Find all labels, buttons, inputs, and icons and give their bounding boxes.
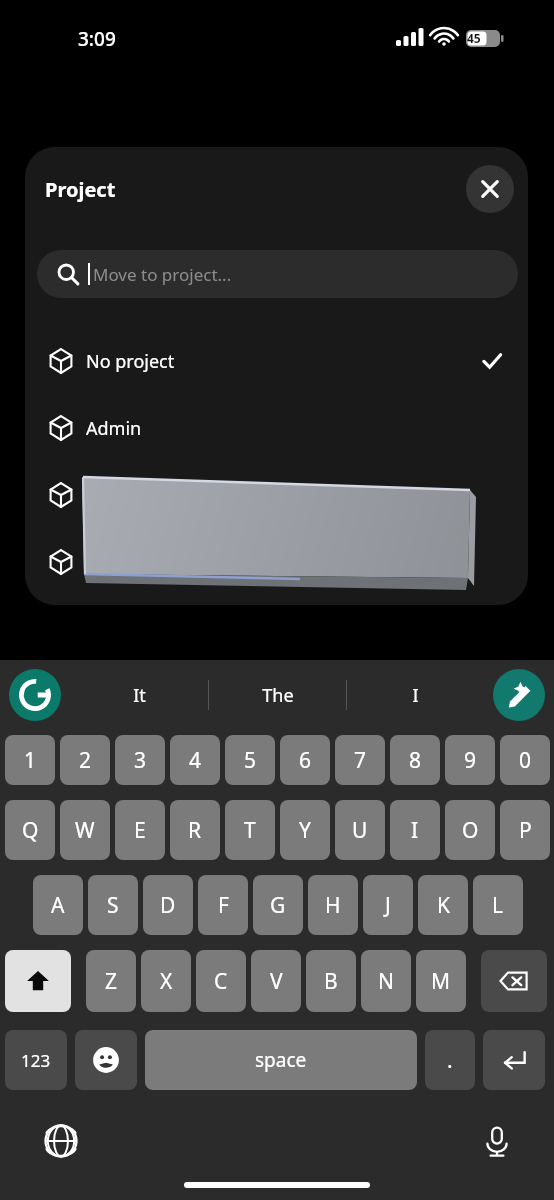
button[interactable]: V	[251, 950, 301, 1012]
staticText: I	[412, 683, 419, 708]
button[interactable]: 4	[170, 735, 220, 785]
staticText: L	[492, 891, 504, 920]
button[interactable]: Backspace	[481, 950, 547, 1012]
staticText: A	[51, 891, 65, 920]
staticText: W	[75, 816, 95, 845]
button[interactable]: 0	[500, 735, 550, 785]
button[interactable]: 9	[445, 735, 495, 785]
button[interactable]: G	[253, 875, 303, 935]
button[interactable]: E	[115, 800, 165, 860]
button[interactable]: I	[347, 660, 484, 730]
staticText: D	[160, 891, 176, 920]
staticText: space	[255, 1047, 307, 1073]
button[interactable]: L	[473, 875, 523, 935]
button[interactable]: P	[500, 800, 550, 860]
button[interactable]	[25, 534, 528, 590]
button[interactable]: Y	[280, 800, 330, 860]
button[interactable]: Shift	[5, 950, 71, 1012]
staticText: O	[462, 816, 479, 845]
staticText: No project	[86, 349, 175, 374]
button[interactable]: D	[143, 875, 193, 935]
button[interactable]: space	[145, 1030, 417, 1090]
button[interactable]: F	[198, 875, 248, 935]
staticText: Q	[22, 816, 39, 845]
button[interactable]: O	[445, 800, 495, 860]
button[interactable]: 3	[115, 735, 165, 785]
button[interactable]: Return	[483, 1030, 545, 1090]
staticText: N	[378, 967, 394, 996]
button[interactable]: 8	[390, 735, 440, 785]
staticText: U	[352, 816, 368, 845]
button[interactable]: No project	[25, 333, 528, 389]
button[interactable]: Assistant	[493, 669, 545, 721]
staticText: It	[133, 683, 146, 708]
staticText: C	[214, 967, 228, 996]
staticText: Admin	[86, 416, 142, 441]
staticText: 45	[467, 30, 481, 46]
staticText: H	[325, 891, 341, 920]
staticText: J	[385, 891, 391, 920]
button[interactable]: Q	[5, 800, 55, 860]
button[interactable]: The	[209, 660, 346, 730]
staticText: Y	[299, 816, 311, 845]
button[interactable]: .	[425, 1030, 475, 1090]
button[interactable]: Z	[86, 950, 136, 1012]
staticText: 123	[21, 1049, 51, 1072]
button[interactable]: Voice input	[474, 1118, 520, 1164]
button[interactable]: B	[306, 950, 356, 1012]
button[interactable]: Close	[466, 165, 514, 213]
button[interactable]: S	[88, 875, 138, 935]
button[interactable]: M	[416, 950, 466, 1012]
staticText: .	[447, 1046, 453, 1075]
button[interactable]: 5	[225, 735, 275, 785]
button[interactable]: K	[418, 875, 468, 935]
staticText: 3	[134, 746, 147, 775]
staticText: Move to project...	[93, 263, 232, 286]
button[interactable]: 1	[5, 735, 55, 785]
staticText: Project	[45, 176, 116, 203]
button[interactable]: X	[141, 950, 191, 1012]
staticText: 1	[24, 746, 37, 775]
button[interactable]: 2	[60, 735, 110, 785]
staticText: I	[411, 816, 419, 845]
button[interactable]: T	[225, 800, 275, 860]
staticText: G	[270, 891, 286, 920]
staticText: 4	[189, 746, 202, 775]
staticText: F	[218, 891, 229, 920]
staticText: 9	[464, 746, 477, 775]
staticText: V	[270, 967, 283, 996]
button[interactable]: A	[33, 875, 83, 935]
button[interactable]: Grammarly	[9, 669, 61, 721]
button[interactable]: U	[335, 800, 385, 860]
button[interactable]	[25, 467, 528, 523]
button[interactable]: C	[196, 950, 246, 1012]
button[interactable]: It	[70, 660, 208, 730]
button[interactable]: H	[308, 875, 358, 935]
staticText: M	[431, 967, 451, 996]
staticText: K	[437, 891, 450, 920]
button[interactable]: W	[60, 800, 110, 860]
staticText: E	[134, 816, 146, 845]
button[interactable]: 123	[5, 1030, 67, 1090]
staticText: T	[244, 816, 256, 845]
button[interactable]: N	[361, 950, 411, 1012]
button[interactable]: 7	[335, 735, 385, 785]
staticText: 6	[299, 746, 312, 775]
staticText: 0	[519, 746, 532, 775]
button[interactable]: Admin	[25, 400, 528, 456]
staticText: S	[107, 891, 119, 920]
staticText: 5	[244, 746, 257, 775]
button[interactable]: 6	[280, 735, 330, 785]
button[interactable]: J	[363, 875, 413, 935]
button[interactable]: Emoji	[75, 1030, 137, 1090]
staticText: 3:09	[78, 26, 116, 52]
button[interactable]: I	[390, 800, 440, 860]
staticText: X	[160, 967, 173, 996]
staticText: R	[188, 816, 202, 845]
staticText: B	[324, 967, 338, 996]
staticText: The	[262, 683, 294, 708]
button[interactable]: R	[170, 800, 220, 860]
button[interactable]: Move to project...	[37, 250, 518, 298]
staticText: P	[519, 816, 532, 845]
button[interactable]: Change language	[38, 1118, 84, 1164]
